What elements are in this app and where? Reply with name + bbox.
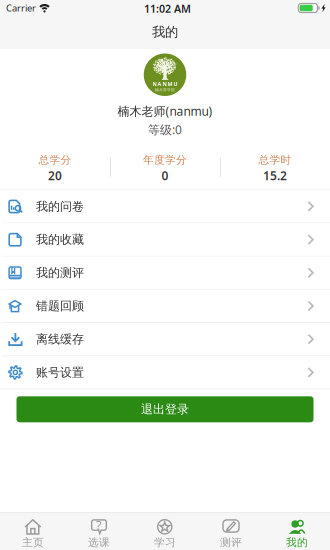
staticText: 账号设置 bbox=[36, 365, 84, 380]
staticText: N A N M U bbox=[152, 80, 177, 87]
staticText: Carrier bbox=[6, 2, 36, 14]
button[interactable]: 我的收藏 bbox=[0, 223, 330, 257]
staticText: 我的问卷 bbox=[36, 199, 84, 214]
staticText: 楠木老师(nanmu) bbox=[117, 103, 212, 119]
staticText: 20 bbox=[48, 167, 62, 183]
staticText: 我的 bbox=[286, 536, 308, 549]
staticText: 我的测评 bbox=[36, 265, 84, 280]
button[interactable]: 离线缓存 bbox=[0, 323, 330, 356]
staticText: 年度学分 bbox=[143, 153, 187, 166]
staticText: 0 bbox=[161, 167, 168, 183]
button[interactable]: 我的 bbox=[264, 513, 330, 550]
button[interactable]: 我的问卷 bbox=[0, 190, 330, 223]
button[interactable]: 我的测评 bbox=[0, 257, 330, 290]
button[interactable]: 退出登录 bbox=[16, 396, 313, 422]
staticText: 退出登录 bbox=[141, 402, 189, 417]
button[interactable]: 测评 bbox=[198, 513, 264, 550]
staticText: 选课 bbox=[88, 536, 110, 549]
staticText: 离线缓存 bbox=[36, 332, 84, 346]
button[interactable]: 学习 bbox=[132, 513, 198, 550]
staticText: 总学时 bbox=[258, 153, 291, 166]
button[interactable]: 账号设置 bbox=[0, 356, 330, 389]
staticText: 学习 bbox=[154, 536, 176, 549]
staticText: 我的收藏 bbox=[36, 232, 84, 247]
staticText: 我的 bbox=[152, 24, 178, 40]
staticText: 等级:0 bbox=[148, 121, 182, 137]
staticText: 测评 bbox=[220, 536, 242, 549]
staticText: 错题回顾 bbox=[36, 299, 84, 313]
staticText: 主页 bbox=[22, 536, 44, 549]
staticText: ? bbox=[96, 516, 102, 534]
button[interactable]: 主页 bbox=[0, 513, 66, 550]
button[interactable]: ? bbox=[66, 513, 132, 550]
button[interactable]: 错题回顾 bbox=[0, 290, 330, 323]
staticText: 11:02 AM bbox=[144, 1, 191, 16]
staticText: 15.2 bbox=[263, 167, 287, 183]
staticText: 总学分 bbox=[38, 153, 71, 166]
staticText: 楠木育学院 bbox=[155, 87, 175, 92]
